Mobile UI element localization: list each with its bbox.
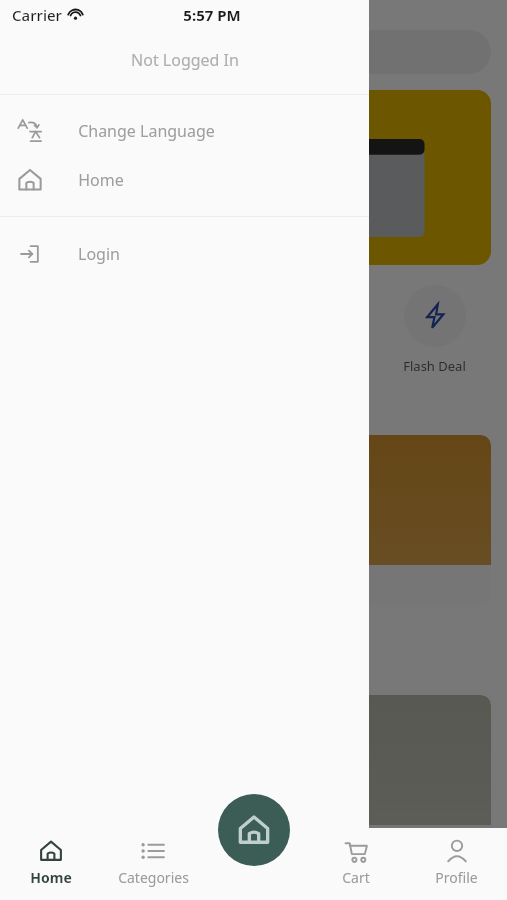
button[interactable]	[16, 695, 247, 865]
staticText: Cart	[342, 868, 370, 887]
staticText: Carrier	[12, 5, 62, 25]
button[interactable]: Profile	[406, 834, 507, 900]
staticText: Not Logged In	[131, 49, 239, 71]
staticText: Home	[78, 169, 124, 191]
staticText: Profile	[435, 868, 478, 887]
button[interactable]: Categories	[102, 834, 204, 900]
button[interactable]: Deal	[253, 285, 374, 375]
staticText: Login	[78, 243, 120, 265]
button[interactable]	[259, 695, 491, 865]
button[interactable]: Not Logged In	[0, 30, 369, 94]
button[interactable]	[16, 30, 491, 74]
button[interactable]: Cart	[305, 834, 406, 900]
button[interactable]: Flash Deal	[374, 285, 495, 375]
button[interactable]: Home	[218, 794, 290, 866]
button[interactable]	[0, 0, 507, 900]
button[interactable]: Home	[0, 155, 369, 204]
staticText: Flash Deal	[403, 357, 466, 375]
button[interactable]: Gifts	[259, 435, 491, 605]
staticText: Home	[30, 868, 72, 887]
staticText: 5:57 PM	[183, 5, 241, 25]
button[interactable]: Login	[0, 229, 369, 278]
staticText: Change Language	[78, 120, 215, 142]
button[interactable]: Change Language	[0, 106, 369, 155]
button[interactable]	[16, 90, 491, 265]
staticText: Categories	[118, 868, 189, 887]
button[interactable]: Home	[0, 834, 102, 900]
